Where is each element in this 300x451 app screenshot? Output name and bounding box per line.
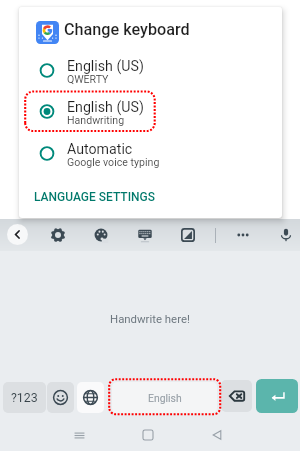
staticText: English (US) xyxy=(67,99,144,116)
staticText: LANGUAGE SETTINGS xyxy=(34,190,155,204)
staticText: QWERTY xyxy=(67,73,109,85)
button[interactable]: LANGUAGE SETTINGS xyxy=(19,183,282,211)
button[interactable]: ?123 xyxy=(3,382,46,413)
button[interactable]: English (US) xyxy=(19,95,282,131)
button[interactable]: More options xyxy=(234,226,252,244)
button[interactable]: Voice input xyxy=(277,226,295,244)
button[interactable]: Back xyxy=(204,422,230,448)
button[interactable]: Home xyxy=(135,422,161,448)
staticText: Change keyboard xyxy=(64,20,190,39)
staticText: Handwriting xyxy=(67,114,125,126)
button[interactable]: Resize keyboard xyxy=(179,226,197,244)
button[interactable]: Keyboard layout xyxy=(136,226,154,244)
button[interactable]: Settings xyxy=(49,226,67,244)
button[interactable]: Back xyxy=(7,224,28,245)
button[interactable]: Theme xyxy=(92,226,110,244)
staticText: Handwrite here! xyxy=(110,312,190,325)
button[interactable]: Emoji xyxy=(47,382,74,413)
button[interactable]: English (US) xyxy=(19,54,282,90)
staticText: Automatic xyxy=(67,141,133,158)
staticText: English (US) xyxy=(67,58,144,75)
button[interactable]: Recent apps xyxy=(66,422,92,448)
button[interactable]: English xyxy=(112,382,217,413)
staticText: ?123 xyxy=(11,390,38,405)
staticText: Google voice typing xyxy=(67,156,160,168)
button[interactable]: Backspace xyxy=(221,380,252,412)
button[interactable]: Change language xyxy=(77,382,104,413)
staticText: English xyxy=(148,392,182,404)
button[interactable]: Automatic xyxy=(19,137,282,173)
button[interactable]: Enter xyxy=(256,379,298,413)
